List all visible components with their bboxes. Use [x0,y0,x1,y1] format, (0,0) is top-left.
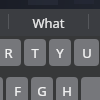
button[interactable]: R [0,39,21,66]
staticText: G [37,82,47,100]
button[interactable] [81,77,100,100]
button[interactable] [0,77,3,100]
staticText: H [62,82,72,100]
staticText: T [31,44,39,62]
button[interactable]: F [6,77,28,100]
button[interactable]: H [56,77,78,100]
staticText: Y [56,44,64,62]
staticText: F [14,82,21,100]
button[interactable]: G [31,77,53,100]
button[interactable]: U [74,39,99,66]
button[interactable]: What [9,9,88,36]
button[interactable]: Y [49,39,71,66]
staticText: U [82,44,92,62]
staticText: R [4,44,13,62]
button[interactable]: T [24,39,46,66]
staticText: What [32,14,65,32]
